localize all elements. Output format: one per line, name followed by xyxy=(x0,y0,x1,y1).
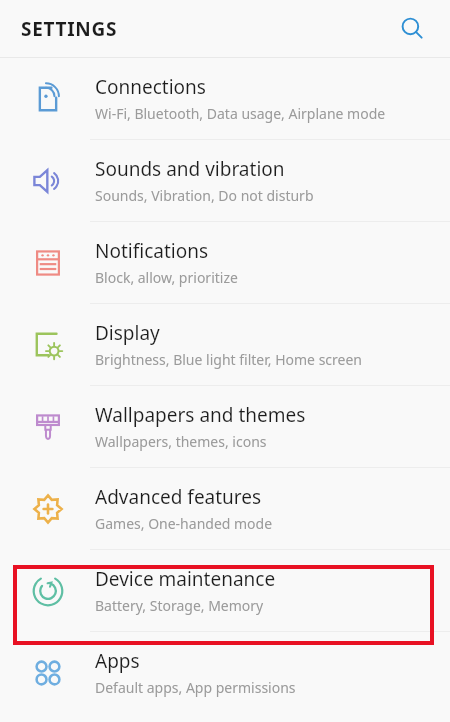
staticText: Default apps, App permissions xyxy=(95,678,296,697)
staticText: Device maintenance xyxy=(95,566,276,592)
staticText: Games, One-handed mode xyxy=(95,514,273,533)
staticText: Battery, Storage, Memory xyxy=(95,596,264,615)
button[interactable]: Search xyxy=(390,6,436,52)
button[interactable]: Wallpapers and themes xyxy=(0,386,450,467)
button[interactable]: Apps xyxy=(0,632,450,713)
staticText: Sounds and vibration xyxy=(95,156,285,182)
button[interactable]: Advanced features xyxy=(0,468,450,549)
staticText: Sounds, Vibration, Do not disturb xyxy=(95,186,314,205)
staticText: Wallpapers, themes, icons xyxy=(95,432,267,451)
staticText: Apps xyxy=(95,648,140,674)
button[interactable]: Sounds and vibration xyxy=(0,140,450,221)
staticText: Advanced features xyxy=(95,484,262,510)
staticText: Notifications xyxy=(95,238,209,264)
staticText: Wallpapers and themes xyxy=(95,402,306,428)
button[interactable]: Display xyxy=(0,304,450,385)
button[interactable]: Connections xyxy=(0,58,450,139)
staticText: Brightness, Blue light filter, Home scre… xyxy=(95,350,363,369)
button[interactable]: Notifications xyxy=(0,222,450,303)
staticText: SETTINGS xyxy=(21,16,118,42)
staticText: Wi-Fi, Bluetooth, Data usage, Airplane m… xyxy=(95,104,386,123)
staticText: Block, allow, prioritize xyxy=(95,268,238,287)
staticText: Display xyxy=(95,320,160,346)
button[interactable]: Device maintenance xyxy=(0,550,450,631)
staticText: Connections xyxy=(95,74,206,100)
